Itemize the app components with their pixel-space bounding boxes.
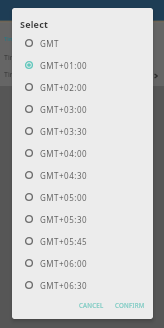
staticText: GMT+05:45: [40, 236, 88, 247]
staticText: Time format: [4, 70, 45, 80]
button[interactable]: Time zone: [0, 49, 164, 66]
button[interactable]: GMT+04:00: [12, 142, 153, 164]
staticText: GMT+03:30: [40, 126, 88, 137]
button[interactable]: GMT+06:30: [12, 274, 153, 296]
staticText: GMT+04:30: [40, 170, 88, 181]
staticText: GMT+02:00: [40, 82, 88, 93]
staticText: GMT+04:00: [40, 148, 88, 159]
button[interactable]: GMT+02:00: [12, 76, 153, 98]
button[interactable]: GMT: [12, 32, 153, 54]
staticText: Time: [4, 35, 19, 43]
button[interactable]: GMT+04:30: [12, 164, 153, 186]
button[interactable]: GMT+06:00: [12, 252, 153, 274]
staticText: GMT+05:00: [40, 192, 88, 203]
button[interactable]: GMT+05:45: [12, 230, 153, 252]
staticText: GMT+03:00: [40, 104, 88, 115]
staticText: CONFIRM: [115, 301, 145, 309]
button[interactable]: GMT+01:00: [12, 54, 153, 76]
staticText: Time zone: [4, 53, 38, 63]
staticText: GMT+06:30: [40, 280, 88, 291]
staticText: Select: [20, 18, 49, 30]
staticText: GMT: [40, 38, 60, 49]
button[interactable]: GMT+05:30: [12, 208, 153, 230]
staticText: GMT+05:30: [40, 214, 88, 225]
button[interactable]: CONFIRM: [111, 297, 149, 313]
button[interactable]: GMT+05:00: [12, 186, 153, 208]
other: Open time format: [152, 72, 160, 80]
button[interactable]: CANCEL: [75, 297, 108, 313]
button[interactable]: GMT+03:30: [12, 120, 153, 142]
staticText: GMT+01:00: [40, 60, 88, 71]
staticText: CANCEL: [79, 301, 104, 309]
staticText: GMT+06:00: [40, 258, 88, 269]
button[interactable]: Time format: [0, 66, 164, 83]
button[interactable]: GMT+03:00: [12, 98, 153, 120]
